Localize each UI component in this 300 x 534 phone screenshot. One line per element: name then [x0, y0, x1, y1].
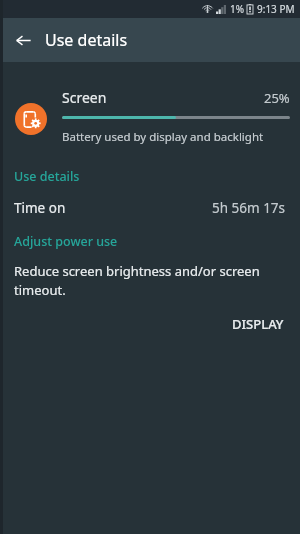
- staticText: Use details: [45, 29, 128, 51]
- staticText: Screen: [62, 88, 107, 107]
- staticText: Battery used by display and backlight: [62, 129, 264, 145]
- staticText: 5h 56m 17s: [212, 199, 286, 217]
- button[interactable]: Time on: [0, 197, 300, 219]
- staticText: Adjust power use: [14, 233, 118, 250]
- button[interactable]: DISPLAY: [216, 309, 300, 339]
- staticText: Reduce screen brightness and/or screen t…: [14, 262, 262, 299]
- staticText: Time on: [14, 199, 66, 217]
- staticText: 9:13 PM: [257, 2, 295, 16]
- staticText: Use details: [14, 168, 80, 185]
- staticText: 1%: [230, 2, 245, 16]
- button[interactable]: Back: [10, 27, 36, 53]
- staticText: 25%: [264, 89, 290, 107]
- staticText: DISPLAY: [232, 315, 284, 333]
